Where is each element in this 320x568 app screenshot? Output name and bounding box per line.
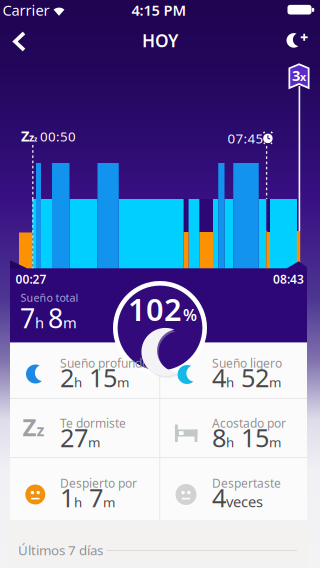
- staticText: z: [36, 419, 44, 441]
- staticText: %: [183, 304, 197, 325]
- staticText: 4: [212, 361, 226, 394]
- staticText: m: [269, 433, 281, 451]
- staticText: 15: [234, 421, 269, 454]
- staticText: 52: [234, 361, 269, 394]
- staticText: 7: [82, 481, 103, 514]
- staticText: m: [63, 313, 77, 332]
- staticText: veces: [226, 492, 263, 511]
- staticText: 1: [60, 481, 74, 514]
- staticText: m: [88, 433, 100, 451]
- staticText: Despierto por: [60, 475, 137, 491]
- staticText: z: [34, 134, 37, 143]
- staticText: 08:43: [273, 271, 304, 287]
- staticText: 4:15 PM: [131, 0, 186, 20]
- staticText: 3: [292, 66, 300, 85]
- staticText: Acostado por: [212, 415, 286, 431]
- staticText: h: [35, 313, 48, 332]
- staticText: 2: [60, 361, 74, 394]
- staticText: h: [74, 373, 82, 391]
- button[interactable]: Atrás: [11, 31, 29, 52]
- staticText: m: [103, 493, 115, 511]
- staticText: 07:45: [227, 129, 263, 147]
- staticText: x: [300, 70, 306, 84]
- staticText: 102: [128, 289, 182, 329]
- staticText: Te dormiste: [60, 415, 126, 431]
- staticText: m: [117, 373, 129, 391]
- staticText: 4: [212, 481, 226, 514]
- staticText: Z: [21, 126, 29, 146]
- staticText: h: [226, 373, 234, 391]
- staticText: 27: [60, 421, 88, 454]
- staticText: Últimos 7 días: [18, 541, 103, 559]
- staticText: h: [226, 433, 234, 451]
- button[interactable]: Añadir sueño: [286, 32, 310, 49]
- staticText: 7: [20, 300, 35, 336]
- staticText: HOY: [142, 29, 178, 52]
- staticText: h: [74, 493, 82, 511]
- button[interactable]: Racha 3x: [288, 63, 309, 89]
- staticText: 00:27: [15, 271, 46, 287]
- staticText: Sueño ligero: [212, 355, 282, 371]
- staticText: z: [29, 130, 34, 144]
- staticText: 15: [82, 361, 117, 394]
- staticText: 00:50: [37, 127, 76, 145]
- staticText: m: [269, 373, 281, 391]
- staticText: Sueño total: [20, 290, 78, 305]
- staticText: 8: [212, 421, 226, 454]
- staticText: 8: [48, 300, 63, 336]
- staticText: Z: [22, 411, 36, 443]
- staticText: Despertaste: [212, 475, 281, 491]
- staticText: Sueño profundo: [60, 355, 149, 371]
- staticText: Carrier: [2, 0, 49, 20]
